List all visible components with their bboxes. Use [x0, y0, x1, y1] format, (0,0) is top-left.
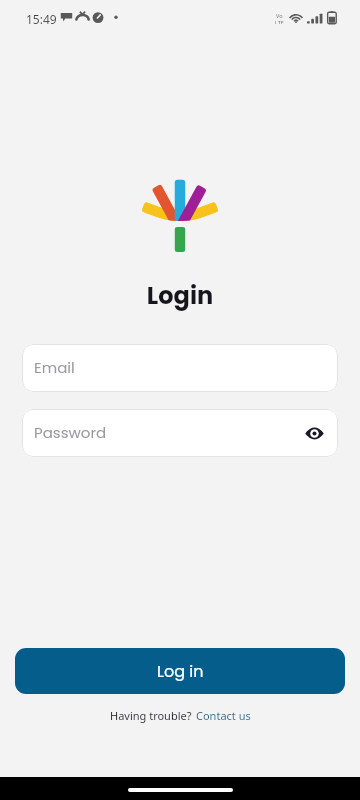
- button[interactable]: Email: [22, 344, 338, 392]
- staticText: Vo: [276, 12, 283, 19]
- staticText: Password: [34, 422, 107, 443]
- button[interactable]: Password: [22, 409, 338, 457]
- button[interactable]: Show password: [300, 419, 328, 447]
- staticText: Email: [34, 357, 75, 378]
- staticText: 15:49: [26, 11, 57, 27]
- staticText: Log in: [157, 660, 204, 682]
- staticText: Login: [0, 279, 360, 313]
- staticText: LTE: [275, 19, 284, 24]
- staticText: Having trouble?: [110, 708, 192, 723]
- button[interactable]: Log in: [15, 648, 345, 694]
- button[interactable]: Contact us: [196, 708, 251, 723]
